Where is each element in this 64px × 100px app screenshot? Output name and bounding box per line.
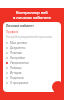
staticText: Контроллер веб <box>16 10 48 15</box>
staticText: История <box>10 71 22 75</box>
staticText: Профиль <box>6 30 19 34</box>
staticText: Документы <box>10 46 26 50</box>
staticText: О программе <box>10 81 29 85</box>
staticText: в личном кабинете <box>13 15 51 20</box>
staticText: Платежи <box>10 51 22 55</box>
staticText: Помощь <box>10 66 22 70</box>
staticText: Мои данные <box>10 41 28 45</box>
button[interactable]: Мои данные <box>3 40 61 45</box>
button[interactable]: Add <box>52 81 64 93</box>
staticText: Настройки <box>10 56 25 60</box>
button[interactable]: О программе <box>3 80 61 85</box>
staticText: Личный кабинет <box>6 24 34 28</box>
button[interactable]: Уведомления <box>3 60 61 65</box>
button[interactable]: Платежи <box>3 50 61 55</box>
button[interactable]: Подписки <box>3 75 61 80</box>
staticText: Уведомления <box>10 61 29 65</box>
staticText: Настройки уведомлений и рассылок <box>6 35 53 39</box>
staticText: Подписки <box>10 76 24 80</box>
button[interactable]: История <box>3 70 61 75</box>
button[interactable]: Настройки <box>3 55 61 60</box>
button[interactable]: Документы <box>3 45 61 50</box>
button[interactable]: Помощь <box>3 65 61 70</box>
